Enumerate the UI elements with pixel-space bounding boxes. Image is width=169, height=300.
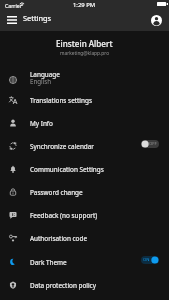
staticText: Carrier	[5, 2, 22, 9]
staticText: Feedback (no support)	[30, 211, 98, 220]
button[interactable]: Dark theme on	[141, 256, 159, 264]
staticText: marketing@klapp.pro	[60, 50, 110, 57]
button[interactable]: Dark Theme	[0, 248, 169, 271]
staticText: OFF	[149, 141, 157, 147]
button[interactable]: Password change	[0, 178, 169, 201]
staticText: Translations settings	[30, 96, 92, 105]
staticText: Dark Theme	[30, 258, 67, 267]
staticText: English	[30, 77, 52, 85]
button[interactable]: Account	[147, 11, 166, 30]
button[interactable]: Feedback (no support)	[0, 201, 169, 224]
staticText: My Info	[30, 119, 53, 128]
staticText: Communication Settings	[30, 165, 104, 174]
staticText: Language	[30, 70, 60, 79]
button[interactable]: Authorisation code	[0, 224, 169, 247]
staticText: 1:29 PM	[73, 1, 96, 9]
button[interactable]: Translations settings	[0, 86, 169, 109]
staticText: Data protection policy	[30, 281, 96, 290]
staticText: Einstein Albert	[56, 38, 113, 49]
staticText: ON	[143, 257, 150, 263]
button[interactable]: Menu	[2, 10, 21, 29]
button[interactable]: My Info	[0, 109, 169, 132]
button[interactable]: Communication Settings	[0, 155, 169, 178]
staticText: Synchronize calendar	[30, 142, 94, 151]
button[interactable]: Synchronize calendar	[0, 132, 169, 155]
staticText: Authorisation code	[30, 234, 87, 243]
button[interactable]: Language	[0, 66, 169, 89]
staticText: Password change	[30, 188, 83, 197]
staticText: Settings	[23, 13, 52, 23]
button[interactable]: Data protection policy	[0, 271, 169, 294]
button[interactable]: Synchronize off	[141, 140, 159, 148]
